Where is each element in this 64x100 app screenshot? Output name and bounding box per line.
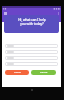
staticText: Cancel xyxy=(14,71,21,74)
staticText: Submit xyxy=(40,71,48,74)
button[interactable]: More options xyxy=(56,11,60,15)
button[interactable]: Submit xyxy=(31,70,56,75)
button[interactable] xyxy=(5,50,58,54)
button[interactable] xyxy=(5,44,58,48)
button[interactable] xyxy=(5,56,58,60)
staticText: Hi, what can I help you with today? xyxy=(18,18,46,26)
button[interactable]: Hi, what can I help you with today? xyxy=(4,15,59,33)
button[interactable]: Navigate up xyxy=(3,11,7,15)
button[interactable]: Cancel xyxy=(5,70,29,75)
button[interactable] xyxy=(5,62,58,66)
